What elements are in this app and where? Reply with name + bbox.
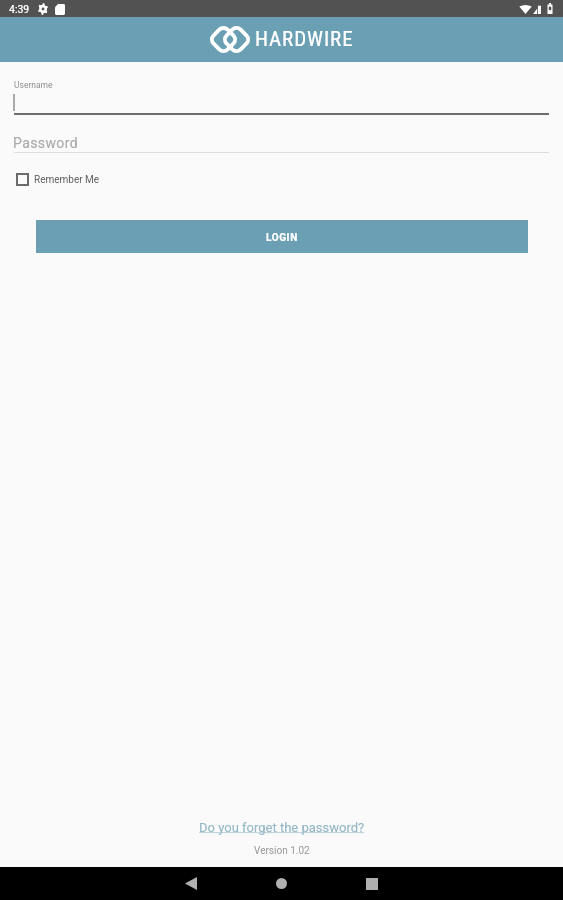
button[interactable]: Back — [146, 867, 236, 900]
button[interactable]: Do you forget the password? — [199, 820, 365, 835]
staticText: Password — [13, 135, 79, 151]
staticText: LOGIN — [266, 232, 298, 244]
staticText: Remember Me — [34, 174, 100, 186]
button[interactable]: LOGIN — [36, 220, 528, 253]
button[interactable]: Recent apps — [327, 867, 417, 900]
button[interactable]: Remember Me — [16, 173, 100, 186]
staticText: Do you forget the password? — [199, 820, 365, 835]
staticText: 4:39 — [9, 3, 30, 15]
button[interactable]: Home — [236, 867, 327, 900]
staticText: HARDWIRE — [255, 27, 354, 52]
staticText: Version 1.02 — [254, 845, 310, 857]
staticText: Username — [14, 80, 53, 90]
